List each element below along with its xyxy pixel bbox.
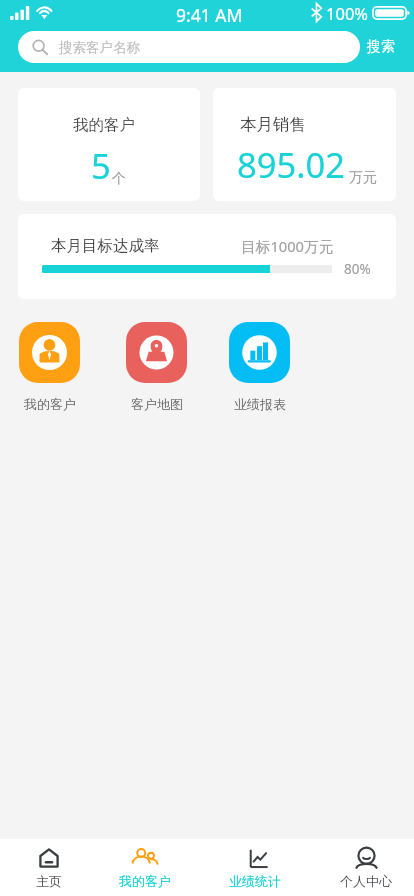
staticText: 我的客户 [73, 115, 135, 135]
staticText: 业绩报表 [234, 396, 286, 412]
staticText: 5 [91, 142, 111, 189]
staticText: 100% [326, 2, 369, 24]
button[interactable]: 本月目标达成率 [18, 214, 396, 299]
staticText: 9:41 AM [176, 3, 243, 27]
button[interactable]: 客户地图 [126, 322, 187, 383]
button[interactable]: 本月销售 [213, 88, 396, 201]
staticText: 搜索客户名称 [59, 39, 140, 56]
button[interactable]: 我的客户 [19, 322, 80, 383]
staticText: 我的客户 [119, 873, 171, 889]
button[interactable]: 业绩报表 [229, 322, 290, 383]
staticText: 我的客户 [24, 396, 76, 412]
button[interactable]: 搜索客户名称 [18, 31, 360, 63]
staticText: 个人中心 [340, 873, 392, 889]
button[interactable]: 我的客户 [18, 88, 200, 201]
staticText: 目标1000万元 [241, 236, 334, 256]
staticText: 本月目标达成率 [51, 236, 160, 256]
staticText: 80% [344, 260, 371, 278]
button[interactable]: 搜索 [360, 31, 414, 63]
staticText: 万元 [349, 169, 377, 187]
staticText: 895.02 [237, 141, 345, 188]
button[interactable]: 我的客户 [103, 839, 206, 896]
staticText: 客户地图 [131, 396, 183, 412]
staticText: 个 [112, 170, 126, 188]
button[interactable]: 业绩统计 [206, 839, 310, 896]
staticText: 本月销售 [240, 114, 306, 135]
button[interactable]: 主页 [0, 839, 103, 896]
button[interactable]: 个人中心 [310, 839, 414, 896]
staticText: 业绩统计 [229, 873, 281, 889]
staticText: 搜索 [367, 38, 395, 56]
staticText: 主页 [36, 873, 62, 889]
